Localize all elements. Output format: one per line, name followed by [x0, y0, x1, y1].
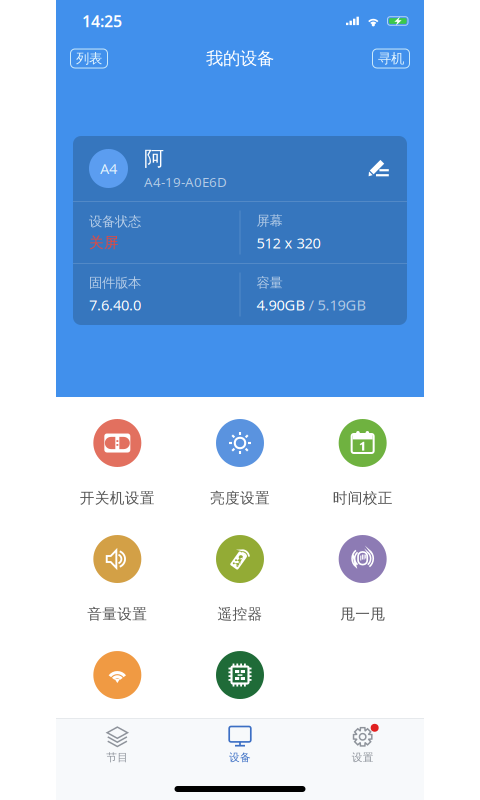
button[interactable]: 网络设置	[56, 651, 179, 739]
staticText: 7.6.40.0	[89, 295, 141, 314]
button[interactable]: 亮度设置	[179, 419, 301, 507]
staticText: 阿	[144, 146, 164, 171]
staticText: 寻机	[378, 50, 404, 67]
staticText: 甩一甩	[340, 605, 385, 623]
button[interactable]: 时间校正	[301, 419, 424, 507]
staticText: 遥控器	[217, 605, 262, 623]
staticText: 开关机设置	[80, 489, 155, 507]
staticText: 时间校正	[333, 489, 393, 507]
staticText: 14:25	[82, 10, 122, 32]
staticText: 固件版本	[89, 275, 141, 291]
button[interactable]: 设备	[179, 725, 301, 764]
staticText: 列表	[76, 50, 102, 67]
button[interactable]: 甩一甩	[301, 535, 424, 623]
staticText: 关屏	[89, 234, 119, 252]
staticText: A4-19-A0E6D	[144, 173, 227, 191]
staticText: 亮度设置	[210, 489, 270, 507]
button[interactable]: 音量设置	[56, 535, 179, 623]
button[interactable]: 节目	[56, 725, 179, 764]
staticText: 设备	[229, 751, 251, 764]
staticText: 节目	[106, 751, 128, 764]
staticText: 512 x 320	[256, 233, 320, 252]
button[interactable]: 设置	[301, 725, 424, 764]
staticText: 我的设备	[206, 48, 274, 69]
staticText: / 5.19GB	[308, 295, 366, 314]
staticText: 设置	[352, 751, 374, 764]
button[interactable]: 列表	[70, 48, 108, 68]
staticText: 屏幕	[256, 213, 282, 229]
staticText: 网络设置	[87, 721, 147, 739]
button[interactable]: Edit device name	[369, 159, 391, 177]
staticText: 4.90GB	[256, 295, 305, 314]
staticText: 硬件信息	[210, 721, 270, 739]
staticText: 音量设置	[87, 605, 147, 623]
staticText: 设备状态	[89, 213, 141, 230]
staticText: 容量	[256, 275, 282, 291]
staticText: A4	[100, 159, 117, 178]
button[interactable]: 遥控器	[179, 535, 301, 623]
button[interactable]: 开关机设置	[56, 419, 179, 507]
button[interactable]: 寻机	[372, 48, 410, 68]
button[interactable]: 硬件信息	[179, 651, 301, 739]
